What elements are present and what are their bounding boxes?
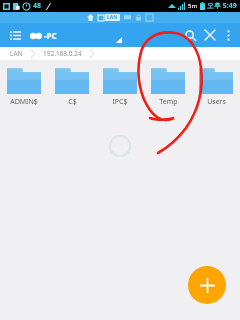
staticText: -PC [44,30,57,41]
button[interactable]: C$ [48,64,96,110]
staticText: C$ [68,97,77,107]
staticText: ADMIN$ [10,97,38,107]
button[interactable]: Temp [144,64,192,110]
staticText: 오후 5:49 [207,1,237,11]
staticText: LAN [10,49,23,58]
button[interactable]: More options [220,27,236,43]
button[interactable]: Search [180,25,200,45]
staticText: 5m [188,2,198,10]
button[interactable]: ADMIN$ [0,64,48,110]
staticText: LAN [107,14,118,21]
button[interactable]: LAN [10,49,23,58]
staticText: Users [207,97,226,107]
staticText: Temp [159,97,178,107]
button[interactable]: Users [192,64,240,110]
staticText: 48 [33,1,42,11]
button[interactable]: Menu [6,26,24,44]
staticText: IPC$ [112,97,128,107]
button[interactable]: IPC$ [96,64,144,110]
staticText: 192.168.0.24 [43,49,82,58]
button[interactable]: Close [200,25,220,45]
button[interactable]: Add [188,266,226,304]
button[interactable]: 192.168.0.24 [43,49,82,58]
